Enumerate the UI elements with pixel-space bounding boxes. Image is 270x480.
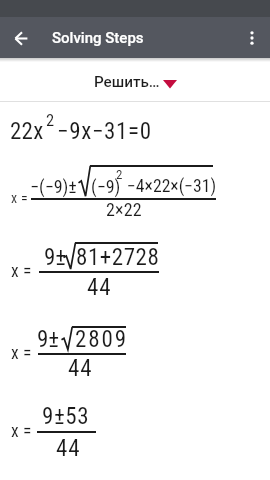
button[interactable]	[0, 108, 270, 148]
staticText: 2	[116, 167, 123, 182]
staticText: 2×22	[106, 199, 142, 220]
staticText: x =	[11, 190, 28, 206]
staticText: 9±	[37, 326, 60, 353]
staticText: x =	[11, 421, 32, 442]
staticText: −9x−31=0	[57, 118, 152, 145]
staticText: x =	[11, 343, 32, 364]
staticText: 44	[87, 274, 112, 301]
button[interactable]	[238, 24, 266, 52]
staticText: 81+2728	[76, 244, 160, 271]
button[interactable]	[0, 238, 270, 300]
button[interactable]	[0, 320, 270, 380]
staticText: −(−9)±	[30, 176, 77, 197]
staticText: 44	[68, 355, 93, 382]
staticText: 22x	[10, 118, 44, 145]
button[interactable]	[6, 23, 36, 53]
staticText: Решить…	[94, 73, 160, 91]
staticText: 44	[56, 435, 81, 462]
staticText: (−9)	[91, 176, 121, 197]
button[interactable]	[0, 400, 270, 460]
staticText: x =	[11, 261, 32, 282]
button[interactable]	[0, 58, 270, 102]
staticText: 2	[46, 111, 55, 130]
staticText: 9±	[44, 244, 67, 271]
button[interactable]	[0, 160, 270, 222]
staticText: 9±53	[42, 403, 90, 430]
staticText: −4×22×(−31)	[127, 176, 217, 197]
staticText: 2809	[75, 326, 129, 353]
staticText: Solving Steps	[52, 29, 144, 47]
